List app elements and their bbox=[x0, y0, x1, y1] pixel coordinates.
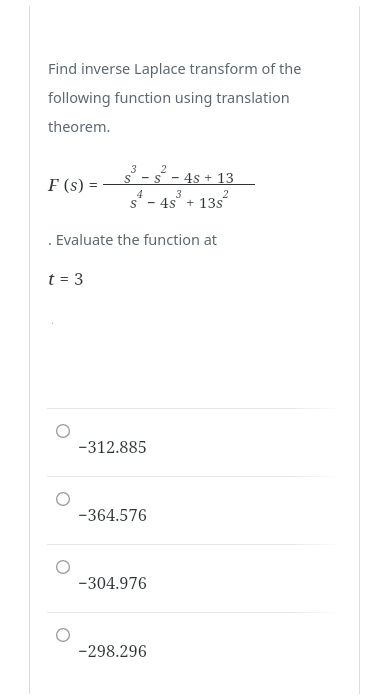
staticText: + bbox=[182, 192, 199, 212]
staticText: s bbox=[216, 192, 223, 212]
staticText: −304.976 bbox=[78, 571, 148, 593]
staticText: s bbox=[130, 192, 137, 212]
staticText: . bbox=[51, 312, 54, 327]
staticText: 4 bbox=[160, 192, 169, 212]
staticText: 4 bbox=[184, 167, 193, 187]
staticText: Find inverse Laplace transform of the bbox=[48, 58, 302, 78]
staticText: s bbox=[154, 167, 161, 187]
staticText: s bbox=[124, 167, 131, 187]
staticText: 2 bbox=[223, 187, 229, 201]
staticText: 3 bbox=[131, 162, 137, 176]
staticText: − bbox=[137, 167, 154, 187]
staticText: = bbox=[55, 267, 74, 290]
button[interactable]: Select option −364.576 bbox=[47, 476, 341, 544]
button[interactable]: Select option −298.296 bbox=[47, 612, 341, 680]
staticText: F bbox=[48, 173, 59, 196]
staticText: ) bbox=[78, 173, 84, 196]
other: Select option −364.576 bbox=[56, 492, 70, 506]
staticText: + bbox=[200, 167, 217, 187]
staticText: − bbox=[167, 167, 184, 187]
staticText: 4 bbox=[137, 187, 143, 201]
staticText: ( bbox=[59, 173, 70, 196]
staticText: −364.576 bbox=[78, 503, 148, 525]
staticText: 2 bbox=[161, 162, 167, 176]
staticText: . Evaluate the function at bbox=[48, 229, 218, 249]
other: Select option −304.976 bbox=[56, 560, 70, 574]
staticText: following function using translation bbox=[48, 87, 290, 107]
button[interactable]: Select option −312.885 bbox=[47, 408, 341, 476]
button[interactable]: Select option −304.976 bbox=[47, 544, 341, 612]
staticText: −298.296 bbox=[78, 639, 148, 661]
other: Select option −312.885 bbox=[56, 424, 70, 438]
staticText: theorem. bbox=[48, 116, 111, 136]
staticText: s bbox=[70, 174, 78, 196]
staticText: 13 bbox=[217, 167, 234, 187]
staticText: −312.885 bbox=[78, 435, 148, 457]
staticText: s bbox=[169, 192, 176, 212]
staticText: t bbox=[48, 267, 55, 290]
staticText: = bbox=[84, 173, 103, 196]
staticText: s bbox=[193, 167, 200, 187]
staticText: 3 bbox=[176, 187, 182, 201]
staticText: 13 bbox=[199, 192, 216, 212]
other: Select option −298.296 bbox=[56, 628, 70, 642]
staticText: 3 bbox=[74, 267, 84, 290]
staticText: − bbox=[143, 192, 160, 212]
